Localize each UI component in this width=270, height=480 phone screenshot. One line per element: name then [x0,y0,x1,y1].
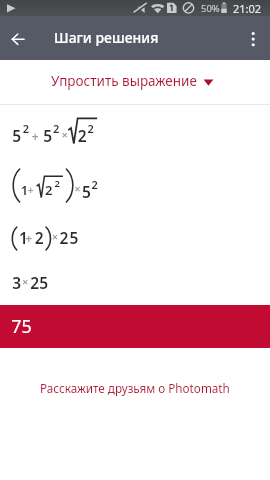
staticText: Расскажите друзьям о Photomath [40,380,230,396]
staticText: Шаги решения [54,28,159,47]
button[interactable]: More options [232,16,270,60]
button[interactable]: Расскажите друзьям о Photomath [0,375,270,401]
button[interactable] [0,60,270,104]
button[interactable]: Back [0,16,36,60]
